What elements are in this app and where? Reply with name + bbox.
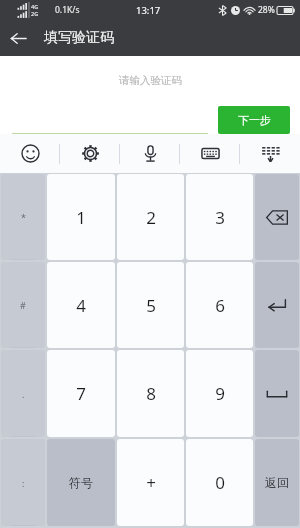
staticText: 4G (31, 3, 39, 10)
button[interactable]: 下一步 (218, 106, 290, 134)
staticText: 填写验证码 (44, 29, 114, 47)
button[interactable]: 1 (47, 174, 115, 260)
button[interactable]: # (1, 262, 45, 348)
button[interactable]: 符号 (47, 439, 115, 526)
button[interactable]: Keyboard (180, 134, 240, 173)
button[interactable]: + (117, 439, 184, 526)
staticText: 28% (258, 4, 275, 16)
staticText: 7 (76, 382, 86, 405)
button[interactable]: 3 (186, 174, 253, 260)
button[interactable]: 7 (47, 350, 115, 437)
staticText: 13:17 (136, 4, 161, 17)
button[interactable]: Space (255, 350, 299, 437)
staticText: 5 (146, 294, 156, 317)
staticText: 2 (146, 206, 156, 229)
staticText: 符号 (69, 475, 93, 490)
staticText: + (146, 471, 156, 494)
button[interactable]: 4 (47, 262, 115, 348)
button[interactable]: 2 (117, 174, 184, 260)
staticText: 下一步 (238, 113, 271, 127)
button[interactable]: 8 (117, 350, 184, 437)
staticText: 请输入验证码 (119, 74, 182, 87)
button[interactable]: Return (255, 439, 299, 526)
button[interactable]: Emoji (0, 134, 60, 173)
button[interactable]: 0 (186, 439, 253, 526)
staticText: * (21, 211, 26, 223)
button[interactable]: Back (0, 20, 36, 56)
button[interactable]: Settings (60, 134, 120, 173)
staticText: : (22, 477, 25, 489)
staticText: 0 (215, 471, 225, 494)
button[interactable] (0, 102, 218, 134)
button[interactable]: 5 (117, 262, 184, 348)
staticText: 返回 (265, 475, 289, 490)
button[interactable]: 6 (186, 262, 253, 348)
staticText: 3 (215, 206, 225, 229)
staticText: 4 (76, 294, 86, 317)
staticText: # (20, 299, 26, 311)
button[interactable]: Voice input (120, 134, 180, 173)
staticText: 6 (215, 294, 225, 317)
button[interactable]: * (1, 174, 45, 260)
button[interactable]: Enter (255, 262, 299, 348)
staticText: 2G (31, 10, 39, 17)
button[interactable]: Delete (255, 174, 299, 260)
button[interactable]: Hide keyboard (240, 134, 300, 173)
staticText: 8 (146, 382, 156, 405)
staticText: 0.1K/s (55, 4, 80, 16)
button[interactable]: 9 (186, 350, 253, 437)
staticText: . (22, 388, 25, 400)
staticText: 1 (76, 206, 86, 229)
staticText: 9 (215, 382, 225, 405)
